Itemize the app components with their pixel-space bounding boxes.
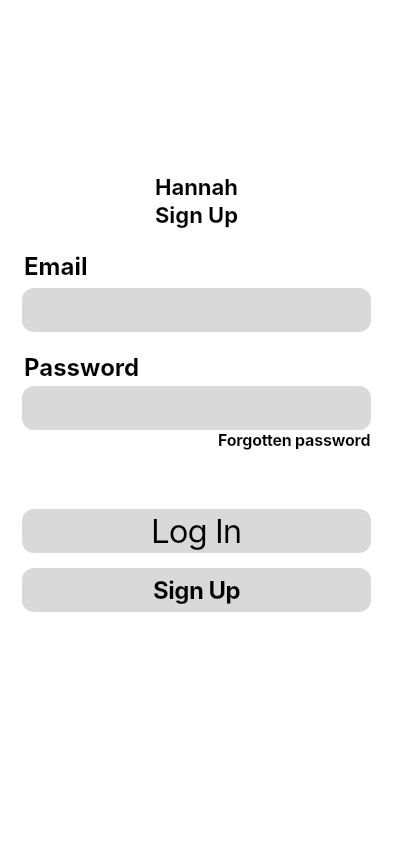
staticText: Password — [24, 353, 140, 382]
button[interactable] — [22, 288, 371, 332]
staticText: Hannah Sign Up — [0, 174, 393, 229]
button[interactable]: Log In — [22, 509, 371, 553]
button[interactable] — [22, 386, 371, 430]
staticText: Sign Up — [153, 576, 241, 605]
staticText: Email — [24, 252, 88, 281]
button[interactable]: Sign Up — [22, 568, 371, 612]
button[interactable]: Forgotten password — [218, 430, 371, 449]
staticText: Log In — [151, 511, 242, 551]
